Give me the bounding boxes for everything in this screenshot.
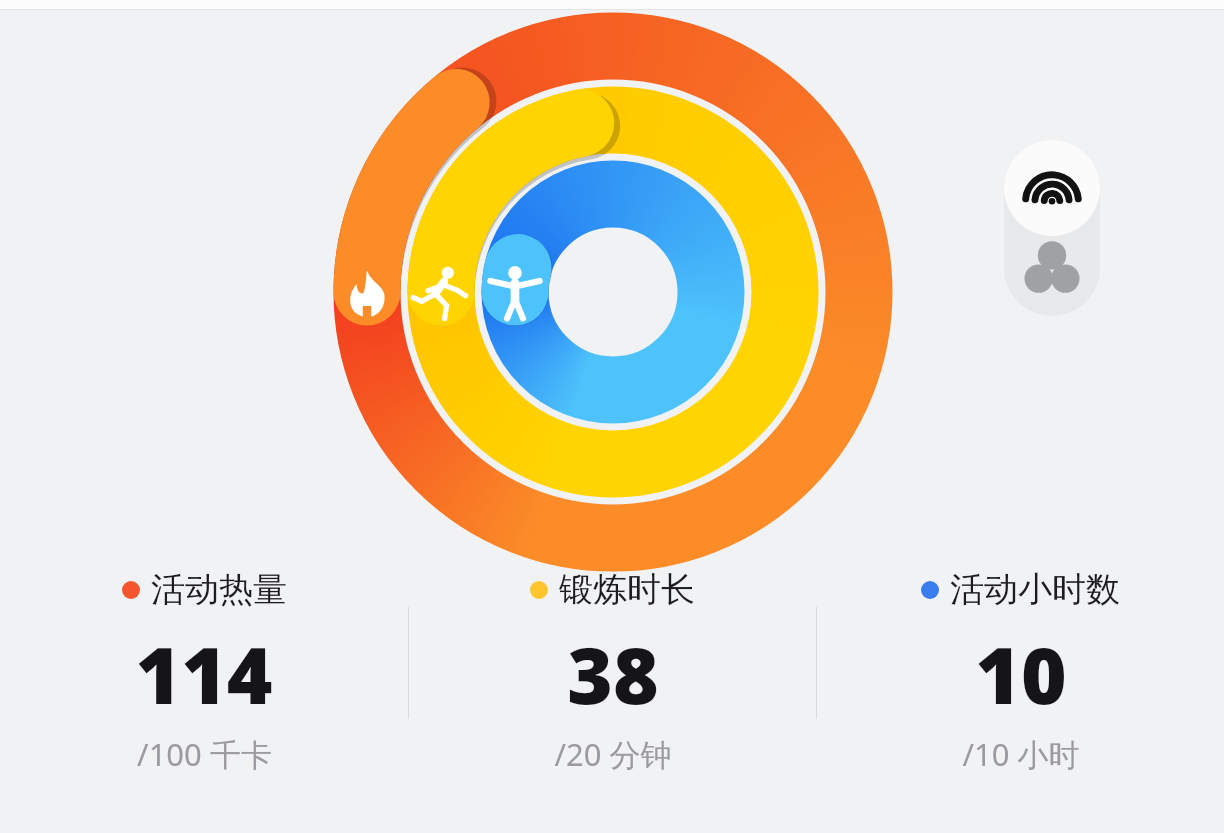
staticText: 10 <box>975 621 1067 727</box>
button[interactable]: 活动小时数 <box>817 548 1224 778</box>
staticText: /20 分钟 <box>554 733 672 775</box>
staticText: 38 <box>567 621 659 727</box>
staticText: /10 小时 <box>962 733 1080 775</box>
staticText: 锻炼时长 <box>559 568 695 611</box>
staticText: 活动热量 <box>151 568 287 611</box>
button[interactable]: Sharing badge <box>1004 140 1100 316</box>
button[interactable]: 锻炼时长 <box>409 548 816 778</box>
button[interactable]: 活动热量 <box>0 548 408 778</box>
other: Activity rings <box>0 0 1224 833</box>
staticText: 活动小时数 <box>950 568 1120 611</box>
staticText: /100 千卡 <box>137 733 272 775</box>
staticText: 114 <box>135 621 273 727</box>
